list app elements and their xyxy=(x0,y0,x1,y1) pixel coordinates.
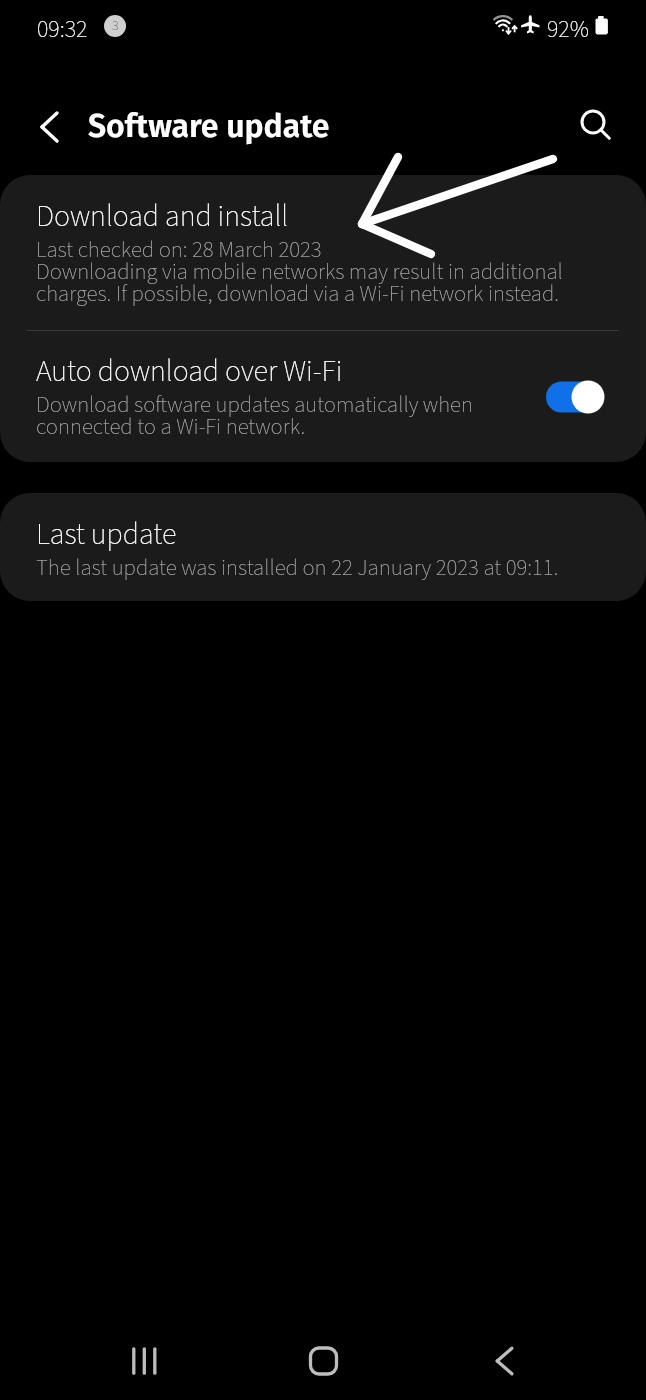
staticText: Last checked on: 28 March 2023 Downloadi… xyxy=(36,234,563,310)
button[interactable] xyxy=(0,330,646,462)
staticText: Auto download over Wi-Fi xyxy=(36,350,343,393)
button[interactable]: Recent apps xyxy=(101,1321,185,1400)
button[interactable]: Home xyxy=(281,1321,365,1400)
button[interactable]: Navigate up xyxy=(20,97,80,157)
button[interactable]: Back xyxy=(462,1321,546,1400)
staticText: 3 xyxy=(112,16,119,36)
staticText: Software update xyxy=(88,107,330,145)
staticText: Last update xyxy=(36,513,177,556)
staticText: Download software updates automatically … xyxy=(36,389,473,443)
button[interactable]: Search xyxy=(563,95,623,155)
staticText: 09:32 xyxy=(37,12,88,46)
button[interactable] xyxy=(0,175,646,330)
staticText: The last update was installed on 22 Janu… xyxy=(36,552,559,584)
button[interactable]: Auto download over Wi-Fi xyxy=(543,377,607,417)
button[interactable]: Last update xyxy=(0,493,646,601)
staticText: Download and install xyxy=(36,195,289,238)
staticText: 92% xyxy=(547,12,589,46)
